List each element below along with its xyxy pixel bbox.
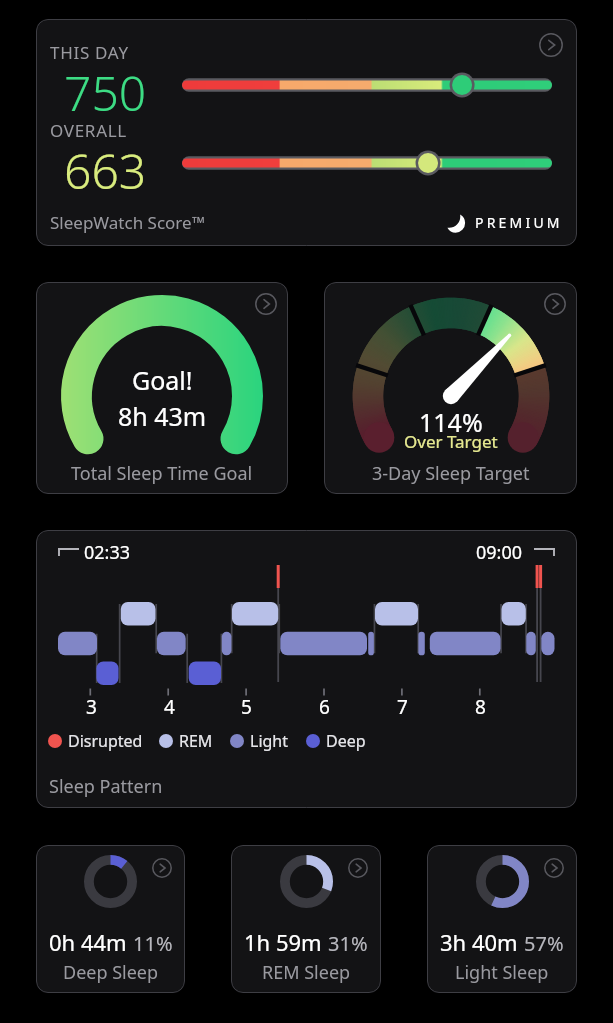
staticText: Light [250,730,289,752]
button[interactable]: Details [324,282,577,494]
button[interactable]: Details [231,845,381,993]
staticText: 5 [241,694,252,720]
staticText: THIS DAY [50,41,129,64]
button[interactable]: Details [152,858,172,878]
staticText: 11% [133,930,173,957]
staticText: REM Sleep [262,960,351,985]
button[interactable]: Details [427,845,577,993]
staticText: 3-Day Sleep Target [372,461,530,486]
button[interactable]: Details [544,858,564,878]
staticText: 1h 59m [244,927,322,957]
staticText: 3 [86,694,97,720]
staticText: Sleep Pattern [49,774,163,799]
staticText: Light Sleep [455,960,549,985]
staticText: Goal! [132,363,193,397]
staticText: OVERALL [50,119,127,142]
button[interactable]: Details [348,858,368,878]
staticText: 114% [419,405,483,439]
staticText: 02:33 [84,540,131,565]
staticText: Deep [326,730,366,752]
staticText: Deep Sleep [63,960,159,985]
staticText: Over Target [404,430,498,453]
staticText: 0h 44m [49,927,127,957]
staticText: Disrupted [68,730,143,752]
staticText: 8h 43m [118,399,207,433]
button[interactable]: Details [36,282,288,494]
staticText: SleepWatch Score™ [50,211,205,234]
staticText: 4 [164,694,175,720]
staticText: 6 [319,694,330,720]
staticText: 57% [524,930,564,957]
button[interactable]: Details [255,293,277,315]
staticText: REM [179,730,213,752]
staticText: PREMIUM [475,213,563,232]
staticText: 663 [64,138,147,203]
staticText: 31% [328,930,368,957]
staticText: Total Sleep Time Goal [71,461,253,486]
button[interactable]: Details [539,33,563,57]
button[interactable]: Details [36,845,185,993]
staticText: 3h 40m [440,927,518,957]
button[interactable]: Details [544,293,566,315]
button[interactable]: 02:33 [36,530,577,808]
staticText: 750 [64,60,147,125]
button[interactable]: Details [36,19,577,246]
staticText: 09:00 [476,540,523,565]
staticText: 8 [475,694,486,720]
staticText: 7 [397,694,408,720]
